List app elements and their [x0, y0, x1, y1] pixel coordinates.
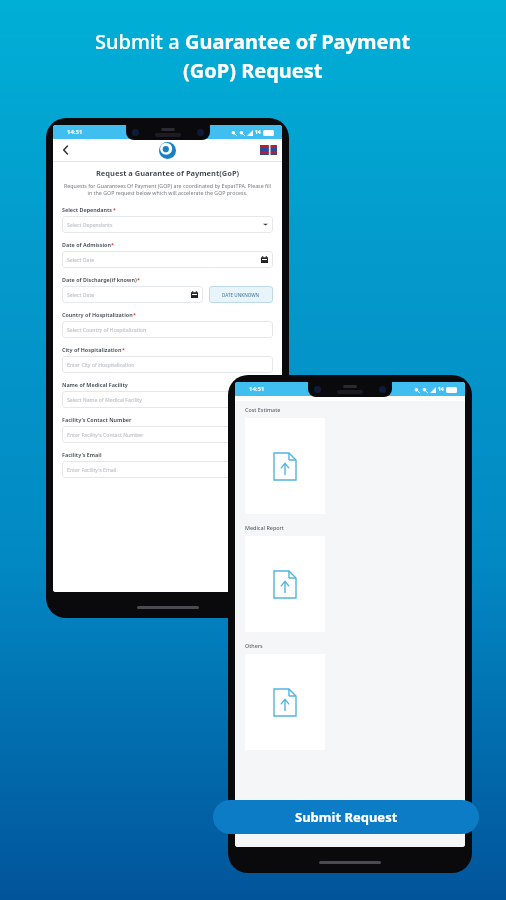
- staticText: Guarantee of Payment: [185, 28, 411, 55]
- button[interactable]: Select Date: [62, 286, 203, 303]
- button[interactable]: Enter City of Hospitalization: [62, 356, 273, 373]
- staticText: Name of Medical Facility: [62, 381, 128, 388]
- staticText: *: [122, 346, 125, 353]
- staticText: Country of Hospitalization: [62, 311, 133, 318]
- staticText: Requests for Guarantees Of Payment (GOP)…: [62, 182, 273, 197]
- staticText: Date of Discharge(if known): [62, 276, 137, 283]
- staticText: 14: [438, 386, 444, 393]
- staticText: City of Hospitalization: [62, 346, 122, 353]
- staticText: 14:51: [249, 385, 265, 393]
- button[interactable]: DATE UNKNOWN: [209, 286, 273, 303]
- staticText: 14: [255, 129, 261, 136]
- button[interactable]: Language: [260, 145, 277, 155]
- staticText: Cost Estimate: [245, 406, 281, 413]
- staticText: DATE UNKNOWN: [222, 292, 260, 298]
- staticText: Submit Request: [295, 808, 398, 826]
- staticText: Select Date: [67, 291, 95, 298]
- staticText: Submit a: [95, 28, 185, 55]
- staticText: *: [137, 276, 140, 283]
- button[interactable]: Select Name of Medical Facility: [62, 391, 273, 408]
- staticText: Enter Facility's Email: [67, 466, 117, 473]
- staticText: *: [133, 311, 136, 318]
- staticText: Select Dependants: [62, 206, 113, 213]
- staticText: Enter City of Hospitalization: [67, 361, 135, 368]
- staticText: Request a Guarantee of Payment(GoP): [62, 168, 273, 178]
- staticText: Select Date: [67, 256, 95, 263]
- staticText: Medical Report: [245, 524, 284, 531]
- staticText: *: [113, 206, 116, 213]
- staticText: (GoP) Request: [183, 57, 323, 84]
- staticText: Select Dependants: [67, 221, 113, 228]
- staticText: Others: [245, 642, 263, 649]
- button[interactable]: Select Country of Hospitalization: [62, 321, 273, 338]
- button[interactable]: Upload Others: [245, 654, 325, 750]
- staticText: Facility's Contact Number: [62, 416, 132, 423]
- staticText: Select Country of Hospitalization: [67, 326, 147, 333]
- button[interactable]: Enter Facility's Contact Number: [62, 426, 273, 443]
- button[interactable]: Upload Cost Estimate: [245, 418, 325, 514]
- staticText: 14:51: [67, 128, 83, 136]
- staticText: Facility's Email: [62, 451, 102, 458]
- button[interactable]: Back: [58, 142, 74, 158]
- staticText: Enter Facility's Contact Number: [67, 431, 144, 438]
- staticText: Select Name of Medical Facility: [67, 396, 142, 403]
- button[interactable]: Select Date: [62, 251, 273, 268]
- button[interactable]: Select Dependants: [62, 216, 273, 233]
- button[interactable]: Submit Request: [213, 800, 479, 834]
- button[interactable]: Upload Medical Report: [245, 536, 325, 632]
- button[interactable]: Enter Facility's Email: [62, 461, 273, 478]
- staticText: Date of Admission: [62, 241, 111, 248]
- staticText: *: [111, 241, 114, 248]
